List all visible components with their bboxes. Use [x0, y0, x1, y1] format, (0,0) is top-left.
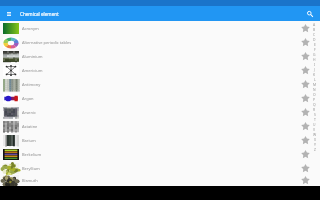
staticText: Z: [314, 147, 316, 152]
staticText: Y: [314, 142, 316, 147]
button[interactable]: Barium: [0, 133, 320, 147]
staticText: B: [313, 27, 316, 32]
staticText: Bismuth: [22, 178, 299, 183]
button[interactable]: Berkelium: [0, 147, 320, 161]
staticText: Antimony: [22, 82, 299, 87]
staticText: R: [313, 107, 316, 112]
staticText: W: [313, 132, 317, 137]
staticText: M: [313, 82, 317, 87]
button[interactable]: Favourite: [299, 162, 312, 175]
button[interactable]: Alternative periodic tables: [0, 35, 320, 49]
button[interactable]: B: [312, 27, 317, 32]
staticText: Americium: [22, 68, 299, 73]
staticText: Acronym: [22, 26, 299, 31]
button[interactable]: Favourite: [299, 120, 312, 133]
staticText: N: [313, 87, 316, 92]
button[interactable]: A: [312, 22, 317, 27]
button[interactable]: R: [312, 107, 317, 112]
button[interactable]: P: [312, 97, 317, 102]
button[interactable]: Americium: [0, 63, 320, 77]
button[interactable]: Arsenic: [0, 105, 320, 119]
button[interactable]: Argon: [0, 91, 320, 105]
button[interactable]: Favourite: [299, 50, 312, 63]
staticText: Berkelium: [22, 152, 299, 157]
button[interactable]: Y: [312, 142, 317, 147]
staticText: T: [314, 117, 316, 122]
button[interactable]: W: [312, 132, 317, 137]
staticText: Argon: [22, 96, 299, 101]
button[interactable]: I: [312, 62, 317, 67]
staticText: H: [313, 57, 316, 62]
button[interactable]: Favourite: [299, 92, 312, 105]
button[interactable]: K: [312, 72, 317, 77]
button[interactable]: Favourite: [299, 22, 312, 35]
button[interactable]: U: [312, 122, 317, 127]
button[interactable]: T: [312, 117, 317, 122]
button[interactable]: X: [312, 137, 317, 142]
staticText: V: [313, 127, 316, 132]
button[interactable]: G: [312, 52, 317, 57]
staticText: O: [313, 92, 316, 97]
staticText: C: [313, 32, 316, 37]
button[interactable]: J: [312, 67, 317, 72]
button[interactable]: Beryllium: [0, 161, 320, 175]
button[interactable]: Antimony: [0, 77, 320, 91]
button[interactable]: E: [312, 42, 317, 47]
button[interactable]: Astatine: [0, 119, 320, 133]
staticText: Astatine: [22, 124, 299, 129]
staticText: L: [314, 77, 316, 82]
staticText: X: [314, 137, 316, 142]
button[interactable]: H: [312, 57, 317, 62]
button[interactable]: Search: [302, 6, 317, 21]
button[interactable]: Bismuth: [0, 175, 320, 186]
staticText: Barium: [22, 138, 299, 143]
button[interactable]: Favourite: [299, 148, 312, 161]
staticText: D: [313, 37, 316, 42]
button[interactable]: Favourite: [299, 36, 312, 49]
staticText: Aluminium: [22, 54, 299, 59]
button[interactable]: V: [312, 127, 317, 132]
button[interactable]: Favourite: [299, 64, 312, 77]
staticText: Arsenic: [22, 110, 299, 115]
staticText: I: [314, 62, 316, 67]
button[interactable]: Z: [312, 147, 317, 152]
button[interactable]: Acronym: [0, 21, 320, 35]
button[interactable]: Favourite: [299, 134, 312, 147]
button[interactable]: Favourite: [299, 175, 312, 186]
staticText: E: [314, 42, 316, 47]
staticText: Beryllium: [22, 166, 299, 171]
staticText: F: [314, 47, 316, 52]
button[interactable]: Q: [312, 102, 317, 107]
staticText: G: [313, 52, 316, 57]
staticText: K: [313, 72, 316, 77]
button[interactable]: Favourite: [299, 106, 312, 119]
button[interactable]: C: [312, 32, 317, 37]
staticText: Alternative periodic tables: [22, 40, 299, 45]
staticText: Q: [313, 102, 316, 107]
button[interactable]: Open navigation drawer: [0, 6, 18, 21]
button[interactable]: Aluminium: [0, 49, 320, 63]
staticText: J: [314, 67, 315, 72]
button[interactable]: F: [312, 47, 317, 52]
staticText: A: [313, 22, 316, 27]
button[interactable]: L: [312, 77, 317, 82]
button[interactable]: N: [312, 87, 317, 92]
button[interactable]: S: [312, 112, 317, 117]
staticText: P: [313, 97, 316, 102]
staticText: U: [313, 122, 316, 127]
staticText: Chemical element: [20, 11, 59, 17]
staticText: S: [314, 112, 316, 117]
button[interactable]: M: [312, 82, 317, 87]
button[interactable]: Favourite: [299, 78, 312, 91]
button[interactable]: D: [312, 37, 317, 42]
button[interactable]: O: [312, 92, 317, 97]
